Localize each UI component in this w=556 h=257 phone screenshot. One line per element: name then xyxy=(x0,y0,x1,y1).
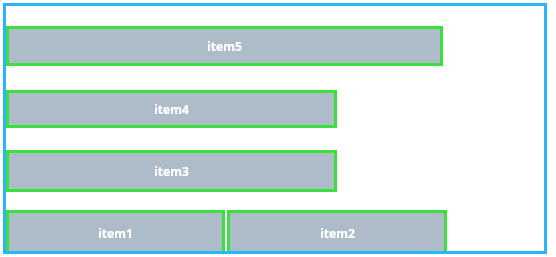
button[interactable]: item2 xyxy=(227,210,447,251)
staticText: item3 xyxy=(154,163,189,179)
button[interactable]: item3 xyxy=(6,150,337,192)
button[interactable]: item4 xyxy=(6,90,337,128)
staticText: item5 xyxy=(207,38,242,54)
button[interactable]: item1 xyxy=(6,210,225,251)
button[interactable]: item5 xyxy=(6,26,443,66)
staticText: item2 xyxy=(320,225,355,241)
staticText: item1 xyxy=(98,225,133,241)
staticText: item4 xyxy=(154,101,189,117)
